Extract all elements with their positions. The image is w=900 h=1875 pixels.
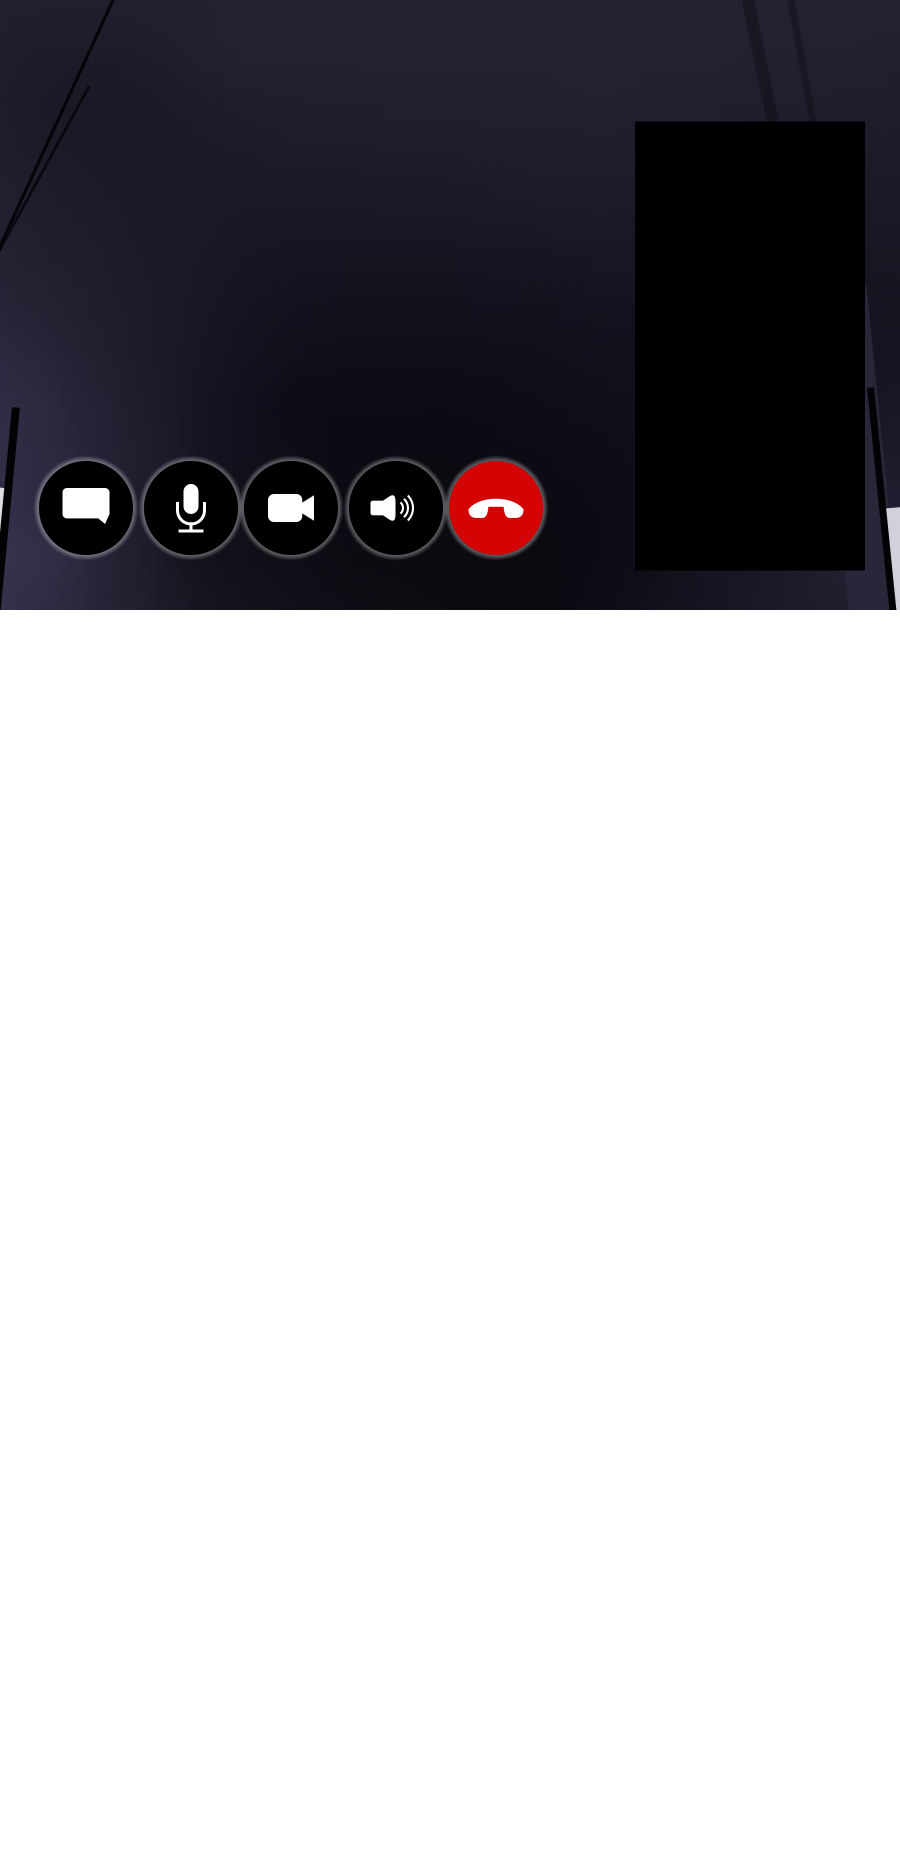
button[interactable]: Messages xyxy=(33,455,139,561)
button[interactable]: Turn camera off xyxy=(238,455,344,561)
button[interactable]: Speaker xyxy=(343,455,449,561)
button[interactable]: End call xyxy=(443,455,549,561)
button[interactable]: Mute xyxy=(138,455,244,561)
